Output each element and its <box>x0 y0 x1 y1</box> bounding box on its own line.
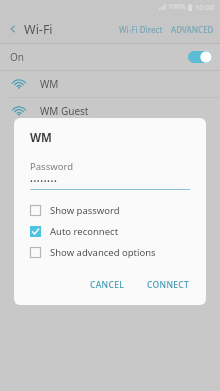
button[interactable]: WM Guest <box>0 98 220 124</box>
staticText: •••••••• <box>30 176 58 186</box>
staticText: 100% <box>168 2 186 12</box>
staticText: CONNECT <box>147 279 190 291</box>
staticText: WM <box>30 130 52 146</box>
button[interactable]: On <box>0 44 220 70</box>
staticText: Show advanced options <box>50 246 156 259</box>
staticText: On <box>10 50 24 64</box>
staticText: Password <box>30 160 73 173</box>
staticText: WM Guest <box>40 104 89 118</box>
button[interactable]: CANCEL <box>82 273 133 297</box>
staticText: ADVANCED <box>171 24 214 35</box>
staticText: Show password <box>50 204 120 217</box>
button[interactable]: Wi-Fi on <box>188 51 212 63</box>
button[interactable]: Navigate up <box>0 16 26 42</box>
button[interactable]: ADVANCED <box>167 18 220 41</box>
staticText: 10:00 <box>195 2 215 12</box>
staticText: Wi-Fi <box>24 21 53 38</box>
button[interactable]: CONNECT <box>139 273 198 297</box>
button[interactable]: Show password <box>14 200 206 221</box>
button[interactable]: Wi-Fi Direct <box>115 18 167 41</box>
button[interactable]: Auto reconnect <box>14 221 206 242</box>
staticText: CANCEL <box>90 279 125 291</box>
staticText: Wi-Fi Direct <box>119 24 163 35</box>
staticText: WM <box>40 77 59 91</box>
button[interactable]: Show advanced options <box>14 242 206 263</box>
button[interactable]: WM <box>0 71 220 97</box>
staticText: Auto reconnect <box>50 225 119 238</box>
